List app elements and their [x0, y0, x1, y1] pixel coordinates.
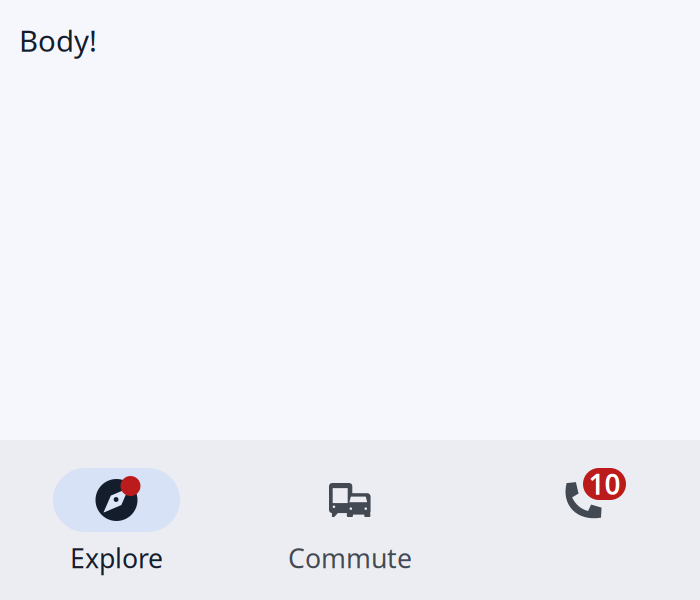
staticText: Body! — [19, 21, 97, 60]
button[interactable]: Explore — [53, 468, 180, 582]
staticText: 10 — [588, 465, 620, 503]
button[interactable]: Calls, 10 missed — [520, 468, 647, 582]
staticText: Explore — [70, 540, 163, 576]
button[interactable]: Commute — [286, 468, 413, 582]
staticText: Commute — [288, 540, 412, 576]
